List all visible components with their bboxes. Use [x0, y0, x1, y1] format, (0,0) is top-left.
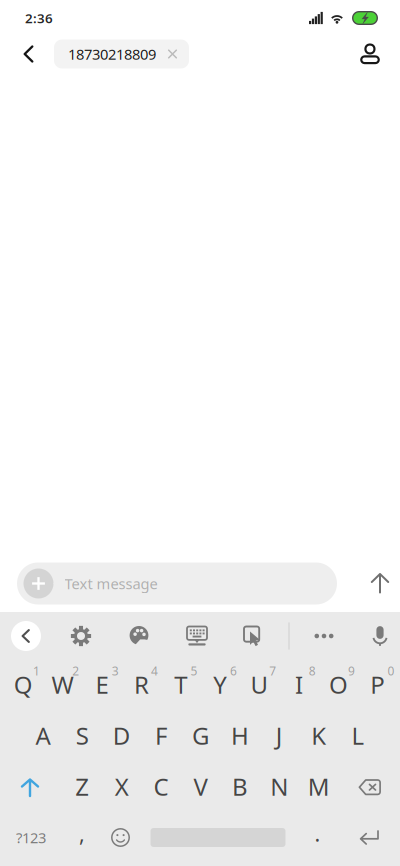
staticText: S [76, 720, 89, 751]
staticText: R [134, 669, 149, 700]
staticText: 9 [348, 663, 355, 679]
staticText: A [35, 720, 50, 751]
button[interactable]: R [121, 660, 161, 711]
staticText: T [174, 669, 187, 700]
button[interactable]: Send [359, 559, 400, 608]
button[interactable]: Comma [63, 813, 97, 864]
button[interactable]: Enter [337, 813, 400, 864]
staticText: Z [75, 771, 89, 802]
button[interactable]: Collapse [0, 612, 53, 660]
staticText: M [308, 771, 330, 802]
staticText: 18730218809 [68, 44, 156, 64]
button[interactable]: I [279, 660, 318, 711]
staticText: O [329, 669, 348, 700]
button[interactable]: Contact [350, 32, 390, 76]
staticText: K [311, 720, 326, 751]
staticText: , [79, 819, 85, 848]
staticText: ?123 [16, 828, 46, 847]
staticText: 2:36 [25, 9, 53, 27]
button[interactable]: Period [296, 813, 334, 864]
button[interactable]: B [220, 762, 259, 813]
staticText: 1 [33, 663, 40, 679]
staticText: 6 [230, 663, 237, 679]
button[interactable]: C [141, 762, 180, 813]
staticText: V [193, 771, 207, 802]
button[interactable]: Y [200, 660, 239, 711]
button[interactable]: Keyboard layout [169, 612, 225, 660]
button[interactable]: Settings [53, 612, 109, 660]
button[interactable]: U [239, 660, 279, 711]
button[interactable]: J [259, 711, 298, 762]
staticText: . [314, 819, 320, 848]
button[interactable]: T [161, 660, 200, 711]
button[interactable]: G [180, 711, 220, 762]
button[interactable]: O [318, 660, 358, 711]
staticText: 0 [387, 663, 394, 679]
button[interactable]: 18730218809 [54, 39, 189, 68]
button[interactable]: N [259, 762, 298, 813]
staticText: J [276, 720, 283, 751]
button[interactable]: D [101, 711, 141, 762]
staticText: H [231, 720, 249, 751]
button[interactable]: S [62, 711, 101, 762]
staticText: 3 [112, 663, 119, 679]
button[interactable]: Z [62, 762, 101, 813]
staticText: L [352, 720, 365, 751]
staticText: 4 [151, 663, 158, 679]
button[interactable]: Theme [109, 612, 169, 660]
button[interactable]: Space [139, 813, 296, 864]
button[interactable]: H [220, 711, 259, 762]
staticText: F [155, 720, 167, 751]
staticText: 5 [190, 663, 197, 679]
staticText: 7 [269, 663, 276, 679]
button[interactable]: Shift [0, 762, 61, 813]
button[interactable]: F [141, 711, 180, 762]
staticText: D [113, 720, 131, 751]
button[interactable]: K [298, 711, 338, 762]
button[interactable]: Q [3, 660, 42, 711]
button[interactable]: Backspace [339, 762, 400, 813]
staticText: U [251, 669, 269, 700]
staticText: B [232, 771, 248, 802]
button[interactable]: Text message [17, 562, 337, 604]
button[interactable]: L [338, 711, 377, 762]
staticText: W [52, 669, 74, 700]
staticText: N [270, 771, 288, 802]
button[interactable]: E [82, 660, 121, 711]
staticText: Y [213, 669, 227, 700]
staticText: E [95, 669, 108, 700]
staticText: C [154, 771, 169, 802]
button[interactable]: Emoji [97, 813, 139, 864]
staticText: Q [14, 669, 33, 700]
staticText: 8 [309, 663, 316, 679]
button[interactable]: W [42, 660, 82, 711]
staticText: I [295, 669, 303, 700]
button[interactable]: Resize [225, 612, 281, 660]
staticText: P [370, 669, 385, 700]
staticText: X [115, 771, 129, 802]
button[interactable]: M [298, 762, 338, 813]
button[interactable]: A [23, 711, 62, 762]
button[interactable]: X [101, 762, 141, 813]
button[interactable]: ?123 [0, 813, 63, 864]
staticText: Text message [64, 574, 157, 593]
button[interactable]: V [180, 762, 220, 813]
button[interactable]: More [297, 612, 351, 660]
button[interactable]: P [358, 660, 397, 711]
staticText: G [192, 720, 209, 751]
button[interactable]: Voice input [359, 612, 400, 660]
button[interactable]: Back [0, 32, 54, 76]
staticText: 2 [72, 663, 79, 679]
